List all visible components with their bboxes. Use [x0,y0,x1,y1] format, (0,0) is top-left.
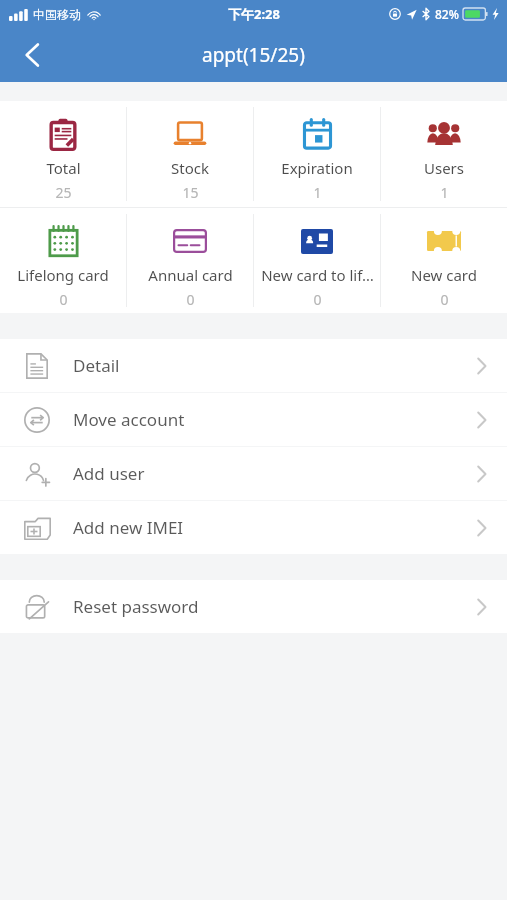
staticText: 0 [440,290,449,309]
staticText: 0 [313,290,322,309]
staticText: 25 [55,183,72,202]
staticText: Detail [73,354,120,377]
staticText: Reset password [73,595,199,618]
staticText: Stock [171,158,209,178]
staticText: Add new IMEI [73,516,184,539]
button[interactable]: Move account [0,393,507,446]
button[interactable]: Add user [0,447,507,500]
staticText: New card [411,265,477,285]
button[interactable]: Lifelong card [0,208,126,313]
staticText: Expiration [281,158,353,178]
button[interactable]: Users [381,101,507,207]
button[interactable]: Total [0,101,126,207]
staticText: Add user [73,462,145,485]
staticText: 下午2:28 [228,5,280,23]
button[interactable]: Back [8,31,56,79]
staticText: 1 [440,183,449,202]
button[interactable]: Expiration [254,101,380,207]
staticText: Annual card [148,265,233,285]
button[interactable]: New card to lif… [254,208,380,313]
staticText: Total [46,158,81,178]
button[interactable]: Add new IMEI [0,501,507,554]
button[interactable]: Stock [127,101,253,207]
staticText: 0 [186,290,195,309]
staticText: appt(15/25) [202,42,305,68]
staticText: 1 [313,183,322,202]
button[interactable]: New card [381,208,507,313]
button[interactable]: Reset password [0,580,507,633]
staticText: 82% [435,6,459,22]
staticText: 0 [59,290,68,309]
button[interactable]: Annual card [127,208,253,313]
staticText: 15 [182,183,199,202]
staticText: Move account [73,408,185,431]
staticText: Users [424,158,464,178]
staticText: Lifelong card [17,265,109,285]
button[interactable]: Detail [0,339,507,392]
staticText: New card to lif… [261,265,374,285]
staticText: 中国移动 [33,7,81,22]
